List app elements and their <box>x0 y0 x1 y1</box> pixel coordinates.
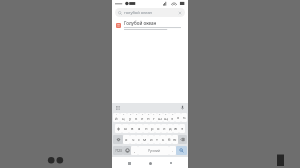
staticText: Русский <box>148 149 160 153</box>
staticText: б <box>168 137 171 143</box>
staticText: щ <box>164 116 168 122</box>
button[interactable]: Voice input <box>180 105 185 110</box>
staticText: ы <box>124 126 128 132</box>
staticText: в <box>131 126 134 132</box>
staticText: 7 <box>153 113 155 116</box>
button[interactable]: ж <box>173 124 179 133</box>
button[interactable]: 4 <box>133 113 139 122</box>
staticText: голубой океан <box>124 10 178 15</box>
button[interactable]: э <box>179 124 185 133</box>
button[interactable]: ю <box>172 135 178 144</box>
staticText: п <box>145 126 148 132</box>
staticText: м <box>143 137 147 143</box>
button[interactable]: ь <box>160 135 166 144</box>
button[interactable]: Shift <box>113 135 123 144</box>
button[interactable]: 3 <box>127 113 133 122</box>
button[interactable]: 2 <box>120 113 127 122</box>
staticText: я <box>125 137 128 143</box>
button[interactable]: д <box>167 124 173 133</box>
button[interactable]: ч <box>130 135 136 144</box>
button[interactable]: 8 <box>157 113 163 122</box>
staticText: 8 <box>159 113 161 116</box>
other: Shift <box>116 137 121 142</box>
button[interactable]: р <box>149 124 155 133</box>
button[interactable]: ф <box>115 124 122 133</box>
button[interactable]: с <box>136 135 142 144</box>
staticText: 9 <box>165 113 167 116</box>
staticText: ь <box>162 137 165 143</box>
staticText: л <box>163 126 166 132</box>
button[interactable]: 9 <box>163 113 169 122</box>
button[interactable]: Голубой океан <box>112 18 188 33</box>
button[interactable]: м <box>142 135 148 144</box>
staticText: ф <box>117 126 121 132</box>
button[interactable]: а <box>136 124 143 133</box>
staticText: ъ <box>183 115 186 121</box>
staticText: ч <box>132 137 135 143</box>
button[interactable]: ы <box>122 124 129 133</box>
staticText: й <box>115 116 118 122</box>
button[interactable]: в <box>129 124 136 133</box>
button[interactable]: о <box>155 124 161 133</box>
staticText: 1 <box>116 113 118 116</box>
staticText: и <box>150 137 153 143</box>
staticText: ж <box>174 126 178 132</box>
staticText: 4 <box>136 113 138 116</box>
staticText: 2 <box>123 113 125 116</box>
staticText: з <box>171 116 174 122</box>
button[interactable]: х <box>175 113 181 122</box>
button[interactable]: я <box>123 135 130 144</box>
staticText: ю <box>173 137 177 143</box>
button[interactable]: Keyboard settings <box>115 105 120 110</box>
button[interactable]: 5 <box>139 113 145 122</box>
staticText: о <box>157 126 160 132</box>
button[interactable]: т <box>154 135 160 144</box>
staticText: 6 <box>148 113 150 116</box>
button[interactable]: голубой океан <box>115 8 185 17</box>
other: Backspace <box>180 137 185 142</box>
button[interactable]: 6 <box>145 113 151 122</box>
button[interactable]: . <box>169 146 176 155</box>
button[interactable]: Русский <box>138 146 169 155</box>
button[interactable]: 7 <box>151 113 157 122</box>
staticText: у <box>129 116 132 122</box>
button[interactable]: 0 <box>169 113 175 122</box>
button[interactable]: и <box>148 135 154 144</box>
staticText: э <box>181 126 184 132</box>
staticText: р <box>151 126 154 132</box>
button[interactable]: Back <box>125 159 133 167</box>
staticText: 5 <box>142 113 144 116</box>
staticText: 0 <box>172 113 174 116</box>
staticText: а <box>138 126 141 132</box>
staticText: ц <box>122 116 125 122</box>
staticText: к <box>135 116 138 122</box>
button[interactable]: п <box>143 124 149 133</box>
button[interactable]: ъ <box>181 113 187 122</box>
button[interactable]: , <box>131 146 138 155</box>
staticText: , <box>134 148 136 154</box>
button[interactable]: Clear search <box>178 11 182 15</box>
button[interactable]: 1 <box>113 113 120 122</box>
button[interactable]: б <box>166 135 172 144</box>
button[interactable]: Home <box>146 159 154 167</box>
button[interactable]: л <box>161 124 167 133</box>
button[interactable]: Emoji <box>123 146 131 155</box>
button[interactable]: Backspace <box>178 135 187 144</box>
staticText: Голубой океан <box>124 20 157 26</box>
staticText: г <box>153 116 155 122</box>
staticText: ?123 <box>115 149 122 153</box>
staticText: с <box>138 137 141 143</box>
button[interactable]: Recent apps <box>167 159 175 167</box>
staticText: 3 <box>130 113 132 116</box>
staticText: х <box>177 115 180 121</box>
staticText: д <box>169 126 172 132</box>
button[interactable]: Search <box>176 146 187 155</box>
staticText: е <box>141 116 144 122</box>
staticText: . <box>172 148 174 154</box>
button[interactable]: ?123 <box>113 146 123 155</box>
staticText: н <box>147 116 150 122</box>
staticText: ш <box>158 116 162 122</box>
staticText: т <box>156 137 158 143</box>
